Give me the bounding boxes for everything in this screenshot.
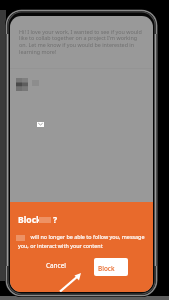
staticText: Block	[18, 214, 42, 226]
staticText: will no longer be able to follow you, me…	[18, 233, 145, 250]
button[interactable]: Block	[94, 258, 128, 276]
staticText: Hi! I love your work, I wanted to see if…	[19, 28, 142, 56]
staticText: ?	[53, 214, 58, 226]
staticText: Cancel	[46, 261, 66, 270]
staticText: Block	[98, 264, 115, 273]
button[interactable]: Message	[37, 122, 44, 127]
button[interactable]: Cancel	[42, 257, 70, 274]
